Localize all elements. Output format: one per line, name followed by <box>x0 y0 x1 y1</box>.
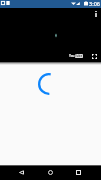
button[interactable]: Back <box>14 165 28 179</box>
button[interactable]: Fullscreen <box>90 52 99 61</box>
button[interactable]: Home <box>43 165 57 179</box>
button[interactable]: Video player <box>0 8 101 62</box>
staticText: You <box>69 54 75 58</box>
button[interactable]: Info <box>91 9 100 18</box>
button[interactable]: Recents <box>71 165 85 179</box>
staticText: 3:06 <box>89 0 100 7</box>
staticText: Tube <box>75 54 83 58</box>
